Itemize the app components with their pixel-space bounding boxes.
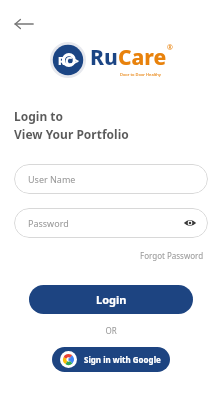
button[interactable]: Sign in with Google (52, 347, 170, 372)
button[interactable]: Password (14, 208, 208, 238)
staticText: View Your Portfolio (14, 126, 129, 142)
staticText: Forgot Password (140, 250, 204, 261)
staticText: Sign in with Google (84, 354, 161, 365)
staticText: OR (0, 325, 222, 336)
staticText: Ru (90, 43, 118, 72)
button[interactable]: Show password (182, 215, 198, 231)
staticText: Login to (14, 108, 64, 124)
button[interactable]: Back (10, 10, 38, 38)
staticText: Care (118, 43, 167, 72)
staticText: ® (167, 43, 173, 53)
button[interactable]: User Name (14, 164, 208, 194)
staticText: Login (96, 292, 127, 307)
staticText: User Name (28, 173, 76, 185)
staticText: RC (58, 53, 73, 68)
staticText: Password (28, 217, 69, 229)
staticText: Door to Door Healthy (120, 72, 161, 77)
button[interactable]: Login (29, 285, 193, 314)
staticText: > (73, 54, 79, 68)
button[interactable]: Forgot Password (138, 248, 206, 263)
